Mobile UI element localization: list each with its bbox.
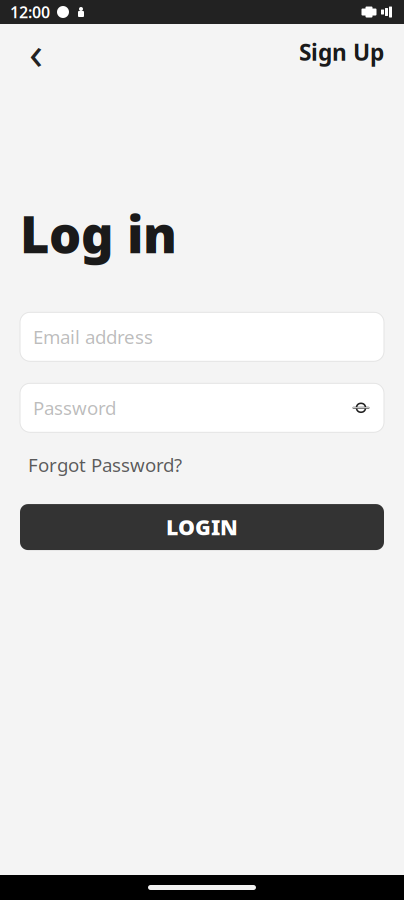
staticText: 12:00 [10, 1, 50, 23]
staticText: Sign Up [299, 37, 384, 67]
button[interactable]: Sign Up [293, 30, 390, 74]
staticText: ‹ [29, 22, 43, 82]
staticText: Forgot Password? [28, 452, 182, 477]
button[interactable]: Forgot Password? [20, 446, 190, 483]
button[interactable]: Show password [346, 393, 376, 423]
button[interactable]: LOGIN [20, 504, 384, 550]
staticText: Email address [33, 324, 153, 349]
button[interactable]: Back [14, 30, 58, 74]
staticText: Password [33, 395, 116, 420]
staticText: Log in [20, 200, 177, 267]
staticText: LOGIN [166, 513, 238, 541]
